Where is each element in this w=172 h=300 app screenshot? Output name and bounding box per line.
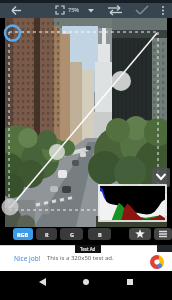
staticText: RGB [17, 231, 29, 238]
button[interactable] [6, 3, 28, 18]
button[interactable]: G [60, 228, 83, 240]
staticText: R [45, 231, 49, 238]
button[interactable] [129, 228, 151, 240]
staticText: B [98, 231, 102, 238]
staticText: G [70, 231, 74, 238]
staticText: 75% [68, 6, 79, 13]
button[interactable] [50, 3, 96, 18]
button[interactable]: B [88, 228, 111, 240]
button[interactable] [152, 168, 170, 187]
staticText: This is a 320x50 test ad. [47, 254, 114, 262]
button[interactable] [32, 271, 54, 293]
button[interactable] [75, 271, 97, 293]
button[interactable]: Nice job! [0, 245, 172, 271]
staticText: Nice job! [14, 254, 41, 263]
button[interactable] [154, 3, 172, 18]
button[interactable] [130, 3, 154, 18]
button[interactable] [100, 3, 130, 18]
button[interactable] [154, 228, 172, 240]
staticText: Test Ad [80, 246, 96, 252]
button[interactable]: RGB [13, 228, 33, 240]
button[interactable]: R [36, 228, 57, 240]
button[interactable] [119, 271, 141, 293]
